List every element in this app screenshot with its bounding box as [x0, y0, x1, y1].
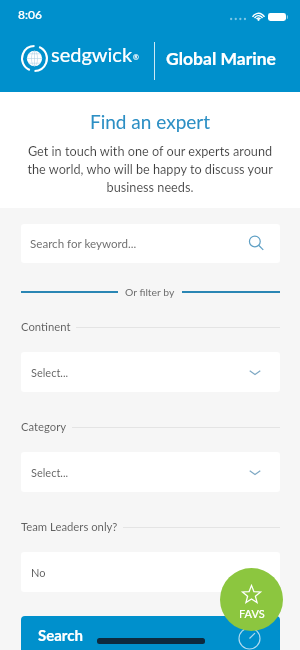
staticText: No [31, 566, 46, 579]
button[interactable]: Select... [21, 352, 280, 392]
staticText: Select... [31, 366, 69, 379]
button[interactable]: No [21, 552, 280, 592]
staticText: Global Marine [166, 48, 276, 69]
staticText: Get in touch with one of our experts aro… [24, 143, 276, 195]
staticText: Or filter by [125, 286, 175, 298]
staticText: Search for keyword... [30, 237, 137, 251]
staticText: sedgwick [51, 42, 133, 66]
button[interactable]: Select... [21, 452, 280, 492]
staticText: FAVS [239, 607, 265, 620]
button[interactable]: Favourites [220, 568, 283, 631]
staticText: Find an expert [90, 110, 211, 133]
other: Search [248, 235, 266, 253]
staticText: Select... [31, 466, 69, 479]
staticText: Category [21, 420, 67, 434]
staticText: Continent [21, 320, 71, 334]
button[interactable]: Search for keyword... [21, 224, 280, 263]
staticText: Search [38, 626, 83, 644]
staticText: Team Leaders only? [21, 520, 118, 534]
staticText: 8:06 [18, 7, 42, 21]
staticText: ® [133, 53, 139, 61]
button[interactable]: Search [21, 616, 280, 650]
other: Recent searches [238, 627, 261, 650]
